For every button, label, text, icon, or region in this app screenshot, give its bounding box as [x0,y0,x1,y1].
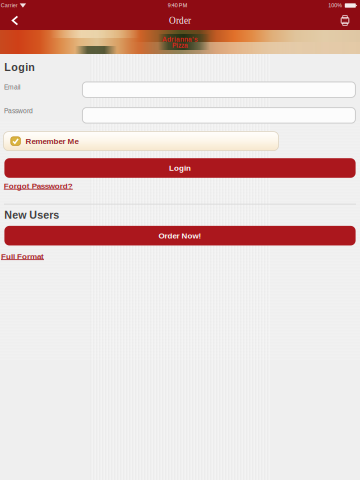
staticText: Order Now! [158,231,201,240]
staticText: Forgot Password? [4,181,73,190]
button[interactable]: Remember Me [3,132,278,151]
staticText: Login [169,163,191,172]
staticText: Full Format [1,252,44,261]
staticText: Email [4,83,20,91]
staticText: Carrier [1,2,18,8]
button[interactable]: Login [4,158,356,178]
button[interactable]: Forgot Password? [4,181,73,190]
staticText: 100% [328,2,342,8]
staticText: Order [169,15,191,26]
staticText: Remember Me [26,137,79,145]
staticText: Adrianna's [162,36,198,43]
button[interactable]: Full Format [1,252,44,261]
staticText: New Users [4,209,59,221]
staticText: Password [4,107,33,114]
staticText: Login [4,61,35,73]
button[interactable]: Back [2,11,28,30]
staticText: Pizza [172,42,188,49]
button[interactable]: Print [332,11,358,30]
button[interactable]: Order Now! [4,226,356,245]
staticText: 9:40 PM [168,2,187,8]
